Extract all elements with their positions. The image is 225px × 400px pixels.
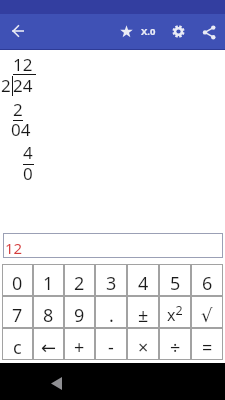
button[interactable] [170,23,187,40]
staticText: = [202,335,213,360]
button[interactable]: 12 [3,233,223,258]
button[interactable]: 2 [64,264,95,296]
staticText: 2 [1,74,11,97]
staticText: 7 [12,303,23,328]
staticText: X.0 [141,25,156,38]
button[interactable]: 1 [33,264,64,296]
button[interactable] [200,23,218,40]
staticText: 0 [23,162,33,185]
staticText: 3 [106,271,117,296]
button[interactable] [6,19,30,43]
staticText: ± [138,303,149,328]
button[interactable]: 7 [2,296,33,328]
button[interactable]: + [64,328,95,360]
staticText: 12 [13,53,33,76]
button[interactable]: - [95,328,127,360]
staticText: + [74,335,85,360]
button[interactable]: ± [127,296,159,328]
staticText: ÷ [170,335,181,360]
button[interactable]: x2 [159,296,191,328]
staticText: 24 [13,74,33,97]
button[interactable]: = [191,328,223,360]
staticText: 4 [138,271,149,296]
button[interactable] [118,23,135,40]
button[interactable]: ÷ [159,328,191,360]
button[interactable]: 0 [2,264,33,296]
staticText: 6 [202,271,213,296]
staticText: c [13,335,22,360]
button[interactable]: 5 [159,264,191,296]
button[interactable]: √ [191,296,223,328]
button[interactable] [44,371,68,395]
button[interactable]: 6 [191,264,223,296]
button[interactable]: . [95,296,127,328]
staticText: 8 [43,303,54,328]
button[interactable]: ← [33,328,64,360]
staticText: ← [41,337,57,358]
staticText: 0 [12,271,23,296]
staticText: 1 [43,271,54,296]
button[interactable]: c [2,328,33,360]
staticText: - [108,335,114,360]
staticText: √ [201,305,213,326]
button[interactable]: X.0 [137,14,159,49]
staticText: x2 [167,302,183,326]
staticText: 4 [23,141,33,164]
staticText: 2 [13,98,23,121]
button[interactable]: × [127,328,159,360]
button[interactable]: 9 [64,296,95,328]
button[interactable]: 3 [95,264,127,296]
button[interactable]: 8 [33,296,64,328]
staticText: 5 [170,271,181,296]
staticText: 9 [74,303,85,328]
staticText: . [109,303,114,328]
staticText: × [138,335,149,360]
button[interactable]: 4 [127,264,159,296]
staticText: 04 [11,118,31,141]
staticText: 12 [5,238,23,258]
staticText: 2 [74,271,85,296]
